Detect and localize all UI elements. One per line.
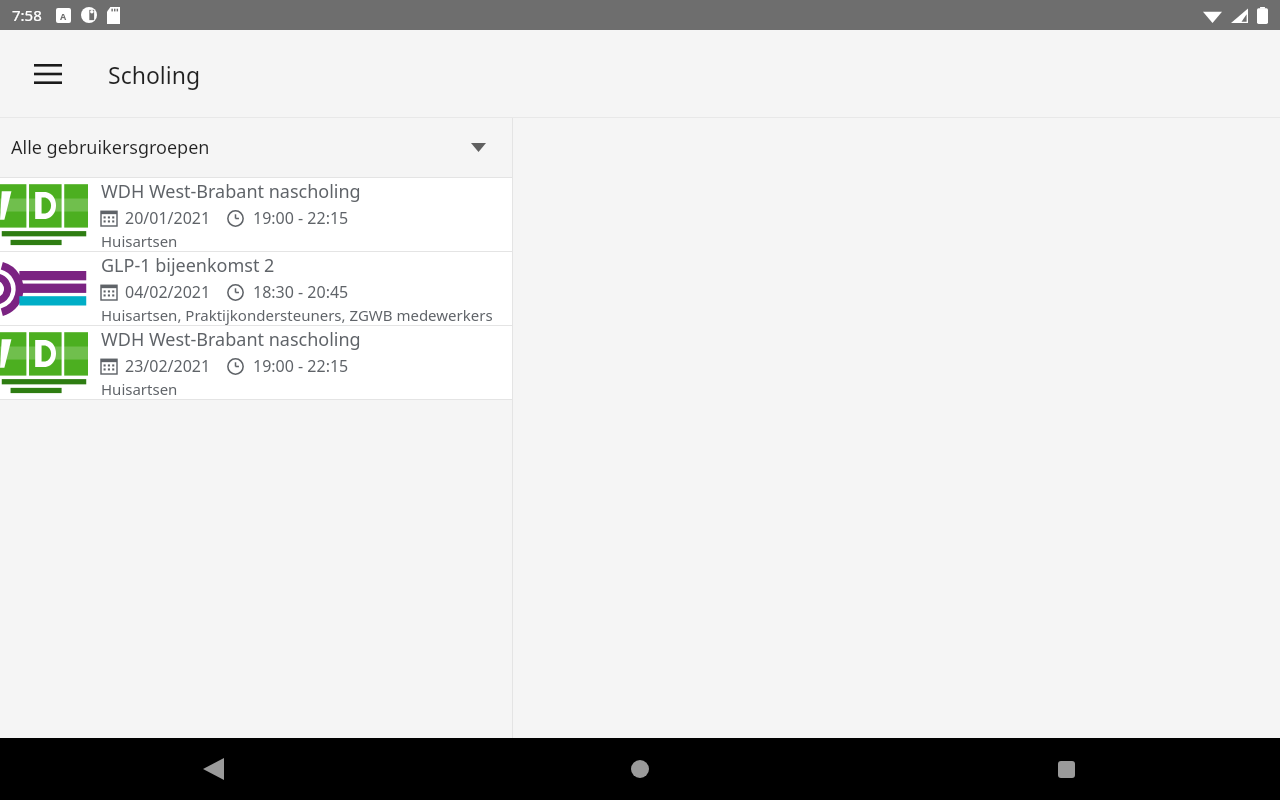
button[interactable]: Alle gebruikersgroepen <box>0 118 512 177</box>
staticText: WDH West-Brabant nascholing <box>101 179 361 204</box>
staticText: 18:30 - 20:45 <box>253 281 349 303</box>
staticText: Huisartsen <box>101 379 178 399</box>
staticText: 04/02/2021 <box>125 281 211 303</box>
button[interactable]: GLP-1 bijeenkomst 2 <box>0 252 512 325</box>
staticText: 19:00 - 22:15 <box>253 207 349 229</box>
staticText: A <box>60 10 67 22</box>
staticText: 23/02/2021 <box>125 355 211 377</box>
button[interactable]: Open navigation menu <box>24 50 72 98</box>
button[interactable]: WDH West-Brabant nascholing <box>0 326 512 399</box>
staticText: 19:00 - 22:15 <box>253 355 349 377</box>
button[interactable]: Home <box>426 738 853 800</box>
button[interactable]: Back <box>0 738 426 800</box>
staticText: 20/01/2021 <box>125 207 211 229</box>
staticText: Huisartsen <box>101 231 178 251</box>
button[interactable]: Recent apps <box>853 738 1280 800</box>
staticText: 7:58 <box>12 5 42 25</box>
staticText: Huisartsen, Praktijkondersteuners, ZGWB … <box>101 305 493 325</box>
staticText: WDH West-Brabant nascholing <box>101 327 361 352</box>
staticText: Scholing <box>108 59 201 90</box>
staticText: GLP-1 bijeenkomst 2 <box>101 253 275 278</box>
button[interactable]: WDH West-Brabant nascholing <box>0 178 512 251</box>
staticText: Alle gebruikersgroepen <box>11 135 210 160</box>
